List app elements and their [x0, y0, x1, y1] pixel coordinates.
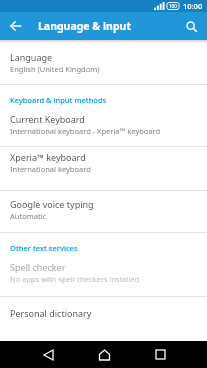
- staticText: Other text services: [10, 243, 78, 253]
- button[interactable]: [175, 12, 207, 40]
- staticText: Current Keyboard: [10, 113, 85, 125]
- staticText: Keyboard & input methods: [10, 95, 107, 105]
- button[interactable]: [0, 12, 32, 40]
- staticText: Xperia™ keyboard: [10, 151, 86, 163]
- staticText: Language: [10, 51, 53, 63]
- button[interactable]: [0, 108, 207, 145]
- staticText: Google voice typing: [10, 198, 94, 210]
- staticText: No apps with spell checkers installed: [10, 274, 140, 284]
- button[interactable]: [0, 46, 207, 84]
- staticText: Language & input: [38, 19, 131, 33]
- staticText: International keyboard: [10, 164, 91, 174]
- button[interactable]: [29, 341, 67, 368]
- button[interactable]: [141, 341, 179, 368]
- staticText: Automatic: [10, 211, 47, 221]
- staticText: 10:00: [183, 1, 203, 11]
- staticText: English (United Kingdom): [10, 64, 100, 74]
- button[interactable]: [0, 190, 207, 228]
- button[interactable]: [0, 255, 207, 293]
- staticText: International keyboard - Xperia™ keyboar…: [10, 126, 161, 136]
- staticText: 100: [169, 3, 177, 9]
- button[interactable]: [0, 296, 207, 334]
- button[interactable]: [85, 341, 123, 368]
- staticText: Spell checker: [10, 261, 66, 273]
- button[interactable]: [0, 146, 207, 184]
- staticText: Personal dictionary: [10, 307, 92, 319]
